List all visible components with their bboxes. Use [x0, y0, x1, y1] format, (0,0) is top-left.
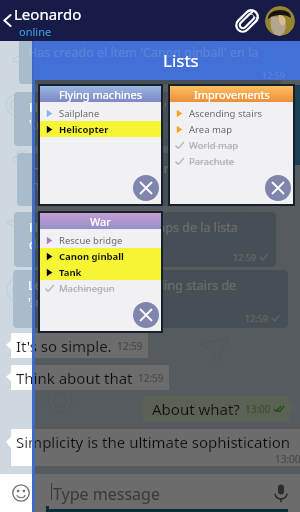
staticText: Lists: [163, 49, 199, 72]
staticText: Parachute: [189, 155, 235, 168]
staticText: Think about that: [16, 368, 133, 388]
button[interactable]: Profile photo: [265, 6, 295, 36]
button[interactable]: Rescue bridge: [40, 232, 161, 248]
button[interactable]: Ascending stairs: [170, 105, 293, 121]
button[interactable]: World map: [170, 137, 293, 153]
staticText: Type message: [53, 483, 160, 505]
staticText: War: [90, 214, 111, 229]
staticText: Machinegun: [59, 282, 115, 295]
staticText: Has creado la lista 'Flying: [32, 160, 180, 177]
button[interactable]: Close War: [133, 302, 159, 328]
staticText: Rescue bridge: [59, 234, 123, 247]
staticText: Flying machines: [59, 87, 143, 102]
button[interactable]: Close Improvements: [265, 175, 291, 201]
button[interactable]: Area map: [170, 121, 293, 137]
staticText: de Improvements: [29, 236, 134, 253]
button[interactable]: Parachute: [170, 153, 293, 169]
staticText: 12:59: [245, 312, 269, 324]
staticText: 12:59: [117, 339, 143, 353]
staticText: Helicopter: [59, 123, 109, 136]
button[interactable]: Machinegun: [40, 280, 161, 296]
staticText: Sailplane: [59, 107, 100, 120]
button[interactable]: Helicopter: [40, 121, 161, 137]
staticText: 'Improvements': [29, 116, 121, 133]
staticText: Has añadido 'World Maps de la lista: [29, 219, 238, 236]
staticText: Improvements: [194, 87, 270, 102]
button[interactable]: Voice message: [268, 480, 294, 506]
button[interactable]: Sailplane: [40, 105, 161, 121]
button[interactable]: Back: [0, 0, 14, 41]
button[interactable]: Close Flying machines: [133, 175, 159, 201]
button[interactable]: Canon ginball: [40, 248, 161, 264]
staticText: Has añadido 'Area map' a la lista: [29, 99, 218, 116]
staticText: Simplicity is the ultimate sophisticatio…: [16, 432, 291, 452]
staticText: About what?: [152, 399, 240, 419]
staticText: Has creado el ítem 'Canon ginball' en la: [34, 45, 265, 62]
staticText: 12:59: [233, 251, 257, 263]
staticText: World map: [189, 139, 239, 152]
staticText: machines': [32, 177, 92, 194]
staticText: Ascending stairs: [189, 107, 263, 120]
staticText: 12:59: [262, 69, 286, 81]
staticText: Le has añadido 'Ascending stairs de: [28, 277, 237, 294]
staticText: It's so simple.: [16, 336, 112, 356]
staticText: Tank: [59, 266, 82, 279]
button[interactable]: Tank: [40, 264, 161, 280]
button[interactable]: Attach: [229, 3, 265, 39]
staticText: online: [19, 24, 52, 39]
staticText: Area map: [189, 123, 233, 136]
staticText: 13:00: [275, 452, 300, 466]
staticText: Leonardo: [14, 4, 82, 24]
staticText: 12:59: [138, 371, 164, 385]
button[interactable]: Emoji: [12, 484, 30, 502]
staticText: 13:00: [245, 402, 271, 416]
staticText: 'Improvements': [28, 294, 120, 311]
staticText: Canon ginball: [59, 250, 124, 263]
staticText: Has creado el ítem 'Canon ginball' en la: [28, 44, 259, 61]
